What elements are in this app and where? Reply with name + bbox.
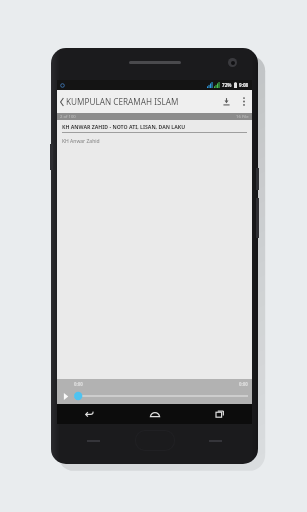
staticText: 9:08 — [239, 82, 249, 88]
staticText: KH ANWAR ZAHID - NOTO ATI, LISAN, DAN LA… — [62, 123, 186, 130]
button[interactable]: Home — [122, 404, 187, 424]
staticText: KH Anwar Zahid — [62, 138, 100, 145]
staticText: KUMPULAN CERAMAH ISLAM — [66, 96, 216, 107]
staticText: 72% — [222, 82, 232, 88]
staticText: 0:00 — [239, 381, 248, 387]
button[interactable]: Recent apps — [187, 404, 252, 424]
button[interactable]: Back — [57, 90, 66, 113]
button[interactable]: Download — [216, 90, 236, 113]
button[interactable]: Back — [57, 404, 122, 424]
staticText: 0:00 — [74, 381, 83, 387]
button[interactable]: More options — [236, 90, 252, 113]
button[interactable]: Play — [57, 389, 74, 403]
button[interactable] — [74, 387, 248, 404]
staticText: 2 of 100 — [60, 114, 76, 120]
staticText: 16 File — [236, 114, 249, 120]
